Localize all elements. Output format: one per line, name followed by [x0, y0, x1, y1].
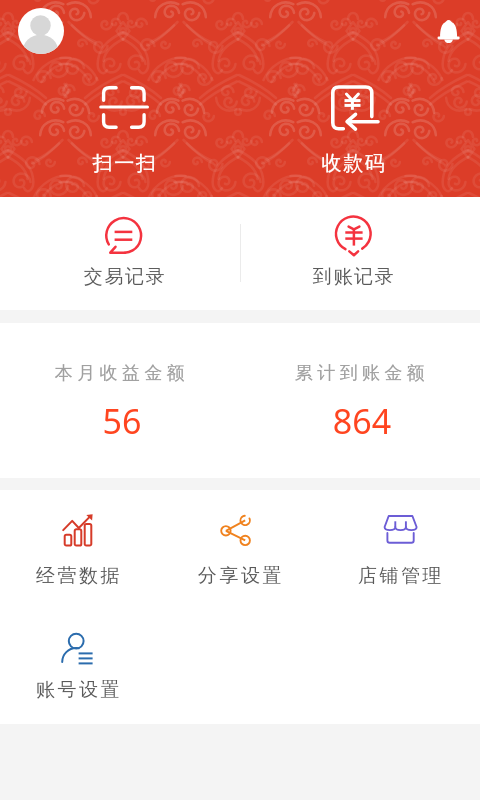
button[interactable]: Profile [18, 8, 64, 54]
staticText: 分享设置 [181, 564, 301, 588]
staticText: 经营数据 [19, 564, 139, 588]
button[interactable]: 店铺管理 [340, 505, 460, 605]
button[interactable]: 扫一扫 [74, 78, 174, 178]
staticText: 账号设置 [19, 678, 139, 702]
staticText: 到账记录 [304, 265, 404, 289]
button[interactable]: 账号设置 [18, 619, 138, 719]
staticText: 56 [2, 398, 242, 444]
staticText: 本月收益金额 [2, 362, 242, 385]
staticText: 店铺管理 [341, 564, 461, 588]
button[interactable]: 累计到账金额 [240, 323, 480, 478]
staticText: 收款码 [304, 151, 404, 176]
button[interactable]: 本月收益金额 [0, 323, 240, 478]
button[interactable]: 经营数据 [18, 505, 138, 605]
button[interactable]: Notifications [432, 16, 462, 46]
button[interactable]: 分享设置 [180, 505, 300, 605]
button[interactable]: 收款码 [303, 78, 403, 178]
staticText: 864 [242, 398, 480, 444]
staticText: 交易记录 [75, 265, 175, 289]
staticText: 累计到账金额 [242, 362, 480, 385]
button[interactable]: 交易记录 [74, 212, 174, 297]
staticText: 扫一扫 [75, 151, 175, 176]
button[interactable]: 到账记录 [303, 212, 403, 297]
